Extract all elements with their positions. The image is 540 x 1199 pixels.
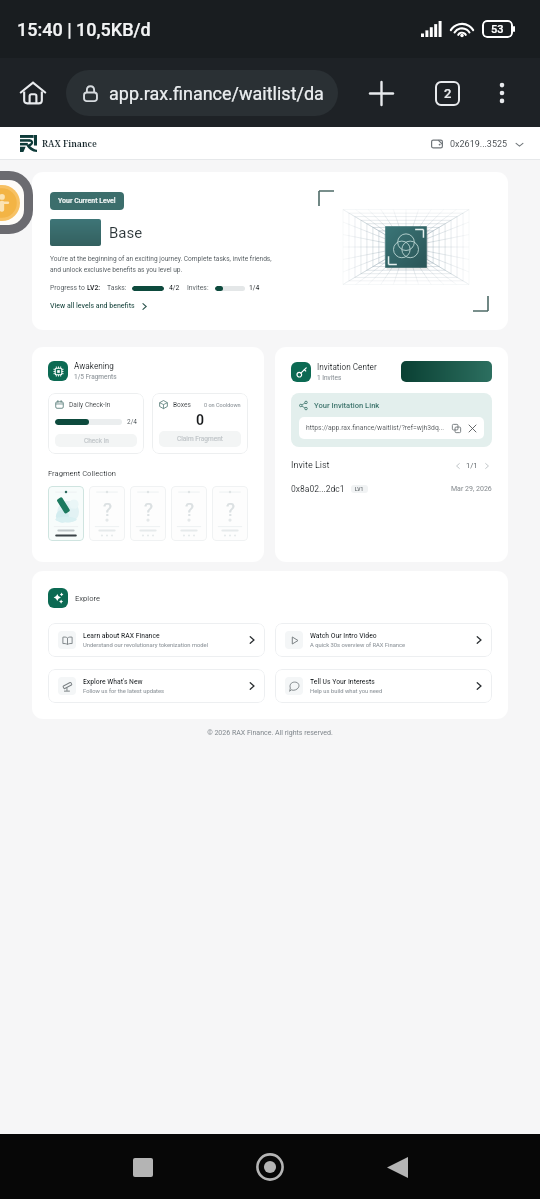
staticText: 0	[159, 412, 241, 428]
staticText: ?	[103, 498, 112, 520]
staticText: 1/4	[249, 284, 260, 292]
staticText: Understand our revolutionary tokenizatio…	[83, 642, 209, 649]
button[interactable]: RAX Finance	[20, 135, 97, 152]
staticText: Follow us for the latest updates	[83, 688, 165, 695]
button[interactable]: Tabs	[425, 71, 469, 115]
staticText: You're at the beginning of an exciting j…	[50, 255, 272, 263]
button[interactable]: ?	[212, 486, 248, 541]
button[interactable]: Check In	[55, 434, 137, 447]
staticText: Check In	[84, 437, 109, 445]
staticText: © 2026 RAX Finance. All rights reserved.	[0, 729, 540, 737]
staticText: 1 Invites	[317, 374, 342, 382]
staticText: ?	[185, 498, 194, 520]
staticText: Awakening	[74, 361, 114, 371]
button[interactable]: More options	[480, 71, 524, 115]
staticText: 0x2619...3525	[450, 139, 508, 150]
button[interactable]: 0x2619...3525	[431, 138, 524, 150]
staticText: 2	[444, 86, 452, 101]
staticText: Your Invitation Link	[314, 401, 380, 410]
staticText: Watch Our Intro Video	[310, 632, 377, 640]
button[interactable]	[401, 361, 492, 382]
button[interactable]: Tell Us Your Interests	[275, 669, 492, 703]
staticText: Explore What's New	[83, 678, 143, 686]
staticText: 1/5 Fragments	[74, 373, 117, 381]
button[interactable]: Explore What's New	[48, 669, 265, 703]
staticText: Invites:	[187, 284, 209, 292]
staticText: https://app.rax.finance/waitlist/?ref=wj…	[306, 424, 445, 432]
staticText: and unlock exclusive benefits as you lev…	[50, 266, 183, 274]
button[interactable]: Your Current Level	[32, 172, 508, 330]
staticText: RAX Finance	[42, 138, 97, 150]
staticText: 15:40 | 10,5KB/d	[17, 19, 151, 40]
staticText: Your Current Level	[58, 197, 116, 205]
staticText: View all levels and benefits	[50, 302, 135, 310]
button[interactable]: Floating assistant	[0, 171, 33, 234]
staticText: Boxes	[173, 401, 191, 409]
button[interactable]: Home	[246, 1143, 294, 1191]
staticText: Learn about RAX Finance	[83, 632, 160, 640]
button[interactable]: New tab	[359, 71, 403, 115]
button[interactable]	[48, 486, 84, 541]
staticText: Base	[109, 224, 143, 242]
button[interactable]: app.rax.finance/waitlist/da	[66, 70, 338, 116]
button[interactable]: Watch Our Intro Video	[275, 623, 492, 657]
button[interactable]: View all levels and benefits	[50, 302, 148, 310]
staticText: Explore	[75, 594, 101, 603]
staticText: Help us build what you need	[310, 688, 383, 695]
button[interactable]: Close	[467, 423, 478, 434]
button[interactable]: ?	[171, 486, 207, 541]
staticText: 4/2	[169, 284, 180, 292]
button[interactable]: ?	[89, 486, 125, 541]
staticText: ?	[226, 498, 235, 520]
button[interactable]: ?	[130, 486, 166, 541]
button[interactable]: Recents	[119, 1143, 167, 1191]
staticText: 1/1	[466, 461, 478, 470]
button[interactable]: Next page	[481, 460, 492, 471]
staticText: 0x8a02...2dc1	[291, 484, 345, 494]
staticText: Progress to	[50, 284, 87, 292]
staticText: app.rax.finance/waitlist/da	[109, 83, 324, 104]
staticText: Invitation Center	[317, 362, 377, 372]
staticText: Claim Fragment	[177, 435, 223, 443]
staticText: Tasks:	[107, 284, 127, 292]
staticText: Mar 29, 2026	[451, 485, 492, 493]
staticText: LV2:	[87, 284, 101, 292]
button[interactable]: Previous page	[452, 460, 463, 471]
staticText: A quick 30s overview of RAX Finance	[310, 642, 406, 649]
button[interactable]: Learn about RAX Finance	[48, 623, 265, 657]
staticText: Tell Us Your Interests	[310, 678, 375, 686]
button[interactable]: Claim Fragment	[159, 431, 241, 447]
button[interactable]: Home	[11, 71, 55, 115]
button[interactable]: Back	[373, 1143, 421, 1191]
staticText: 53	[491, 23, 504, 36]
button[interactable]: Copy link	[450, 422, 462, 434]
staticText: 2/4	[127, 418, 137, 426]
staticText: ?	[144, 498, 153, 520]
staticText: Daily Check-In	[69, 401, 111, 409]
staticText: Invite List	[291, 460, 330, 471]
staticText: Fragment Collection	[48, 469, 116, 478]
staticText: 0 on Cooldown	[204, 402, 241, 408]
staticText: LV1	[355, 486, 364, 492]
